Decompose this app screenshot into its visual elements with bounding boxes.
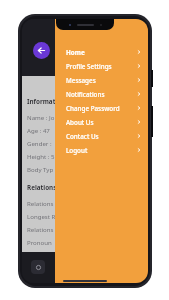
- staticText: Profile Settings: [66, 62, 137, 71]
- staticText: Body Typ: [27, 165, 54, 173]
- button[interactable]: About Us: [55, 115, 148, 129]
- staticText: Logout: [66, 146, 137, 155]
- staticText: Longest R: [27, 212, 56, 220]
- button[interactable]: Camera: [31, 260, 45, 274]
- button[interactable]: Change Password: [55, 101, 148, 115]
- button[interactable]: Contact Us: [55, 129, 148, 143]
- staticText: Informati: [27, 97, 58, 106]
- button[interactable]: Messages: [55, 73, 148, 87]
- staticText: Relations: [27, 199, 54, 207]
- staticText: Messages: [66, 76, 137, 85]
- staticText: Relations: [27, 225, 54, 233]
- staticText: Relationsh: [27, 183, 61, 192]
- button[interactable]: Logout: [55, 143, 148, 157]
- button[interactable]: Back: [33, 42, 50, 59]
- button[interactable]: Notifications: [55, 87, 148, 101]
- staticText: Notifications: [66, 90, 137, 99]
- staticText: Name : Jo: [27, 113, 55, 121]
- staticText: Pronoun: [27, 238, 52, 246]
- staticText: Gender :: [27, 139, 54, 147]
- staticText: Home: [66, 48, 137, 57]
- staticText: Change Password: [66, 104, 137, 113]
- staticText: Contact Us: [66, 132, 137, 141]
- button[interactable]: Profile Settings: [55, 59, 148, 73]
- button[interactable]: Home: [55, 45, 148, 59]
- staticText: Height : 5: [27, 152, 55, 160]
- staticText: About Us: [66, 118, 137, 127]
- staticText: Age : 47: [27, 126, 50, 134]
